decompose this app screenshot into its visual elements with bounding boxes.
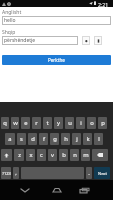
- button[interactable]: b: [59, 149, 68, 161]
- staticText: w: [13, 119, 18, 127]
- staticText: z: [18, 151, 21, 159]
- button[interactable]: n: [70, 149, 79, 161]
- button[interactable]: ?123: [1, 167, 11, 179]
- button[interactable]: g: [50, 133, 59, 145]
- staticText: h: [64, 135, 68, 143]
- staticText: l: [98, 135, 100, 143]
- staticText: o: [90, 119, 94, 127]
- button[interactable]: w: [11, 117, 19, 129]
- button[interactable]: u: [65, 117, 74, 129]
- staticText: .: [88, 169, 90, 177]
- staticText: v: [51, 151, 54, 159]
- button[interactable]: z: [14, 149, 24, 161]
- staticText: Perkthe: [48, 57, 65, 63]
- staticText: s: [20, 135, 23, 143]
- staticText: p: [101, 119, 105, 127]
- button[interactable]: Home: [40, 180, 74, 200]
- staticText: y: [57, 119, 60, 127]
- button[interactable]: ,: [13, 167, 19, 179]
- button[interactable]: f: [39, 133, 48, 145]
- button[interactable]: Backspace: [92, 149, 108, 161]
- button[interactable]: s: [17, 133, 26, 145]
- staticText: x: [29, 151, 33, 159]
- staticText: c: [40, 151, 43, 159]
- staticText: 2:21: [98, 1, 109, 8]
- button[interactable]: r: [32, 117, 41, 129]
- button[interactable]: x: [26, 149, 35, 161]
- staticText: t: [46, 119, 49, 127]
- staticText: u: [68, 119, 72, 127]
- button[interactable]: k: [83, 133, 92, 145]
- staticText: ?123: [2, 171, 11, 176]
- button[interactable]: l: [94, 133, 103, 145]
- button[interactable]: c: [37, 149, 46, 161]
- staticText: i: [80, 119, 82, 127]
- staticText: Shqip: [2, 29, 16, 36]
- staticText: përshëndetje: [4, 37, 36, 44]
- staticText: j: [76, 135, 78, 143]
- button[interactable]: Perkthe: [2, 55, 111, 65]
- staticText: r: [35, 119, 38, 127]
- button[interactable]: m: [81, 149, 90, 161]
- button[interactable]: e: [21, 117, 30, 129]
- staticText: q: [3, 119, 7, 127]
- button[interactable]: Next: [94, 167, 110, 179]
- button[interactable]: hello: [2, 16, 111, 25]
- button[interactable]: a: [5, 133, 15, 145]
- staticText: m: [83, 151, 89, 159]
- button[interactable]: i: [76, 117, 85, 129]
- staticText: n: [73, 151, 77, 159]
- staticText: k: [86, 135, 90, 143]
- staticText: Anglisht: [2, 9, 22, 16]
- button[interactable]: Recents: [67, 180, 101, 200]
- staticText: g: [53, 135, 57, 143]
- button[interactable]: q: [1, 117, 9, 129]
- button[interactable]: përshëndetje: [2, 36, 78, 45]
- button[interactable]: o: [87, 117, 96, 129]
- staticText: Next: [98, 171, 107, 176]
- button[interactable]: d: [28, 133, 37, 145]
- button[interactable]: v: [48, 149, 57, 161]
- staticText: f: [43, 135, 45, 143]
- button[interactable]: t: [43, 117, 52, 129]
- staticText: a: [8, 135, 12, 143]
- button[interactable]: Hide keyboard: [8, 180, 42, 200]
- button[interactable]: h: [61, 133, 70, 145]
- staticText: b: [62, 151, 66, 159]
- button[interactable]: j: [72, 133, 81, 145]
- staticText: d: [31, 135, 35, 143]
- staticText: e: [24, 119, 28, 127]
- button[interactable]: Share: [94, 36, 102, 45]
- staticText: hello: [4, 17, 16, 24]
- button[interactable]: Copy: [82, 36, 90, 45]
- button[interactable]: Shift: [1, 149, 12, 161]
- button[interactable]: y: [54, 117, 63, 129]
- button[interactable]: p: [98, 117, 107, 129]
- staticText: ,: [15, 169, 17, 177]
- button[interactable]: .: [86, 167, 92, 179]
